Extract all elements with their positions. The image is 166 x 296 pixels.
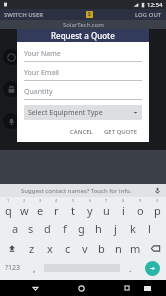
button[interactable]: Suggest contact names? Touch for info. <box>0 184 166 197</box>
staticText: u <box>103 203 110 218</box>
staticText: l <box>148 221 151 236</box>
staticText: z <box>29 241 35 256</box>
button[interactable]: SWITCH USER <box>3 11 45 19</box>
button[interactable]: Your Name <box>24 49 142 62</box>
staticText: 0 <box>156 198 159 203</box>
button[interactable]: GET QUOTE <box>100 126 142 138</box>
staticText: a <box>12 221 19 236</box>
button[interactable]: s <box>23 218 39 238</box>
staticText: s <box>28 221 34 236</box>
staticText: MANAGE NOTIFICATIONS <box>24 116 109 126</box>
button[interactable]: . <box>122 258 139 278</box>
button[interactable]: 7 <box>98 197 115 218</box>
button[interactable]: 8 <box>115 197 132 218</box>
staticText: x <box>47 241 53 256</box>
staticText: c <box>65 241 71 256</box>
button[interactable]: x <box>41 238 59 258</box>
button[interactable]: Back <box>25 280 46 296</box>
button[interactable]: Voice input <box>154 187 161 194</box>
staticText: 6 <box>89 198 92 203</box>
staticText: CANCEL <box>70 128 93 136</box>
staticText: Suggest contact names? Touch for info. <box>21 187 132 195</box>
staticText: 5 <box>72 198 75 203</box>
staticText: k <box>130 221 136 236</box>
button[interactable]: g <box>73 218 90 238</box>
staticText: 12:54 <box>147 1 163 9</box>
button[interactable]: Home <box>70 280 92 296</box>
button[interactable]: z <box>23 238 41 258</box>
button[interactable]: 0 <box>149 197 166 218</box>
staticText: S <box>88 11 91 18</box>
button[interactable]: k <box>124 218 141 238</box>
button[interactable]: Backspace <box>144 238 166 258</box>
button[interactable]: 6 <box>81 197 98 218</box>
staticText: GET QUOTE <box>104 128 138 136</box>
button[interactable]: l <box>141 218 158 238</box>
staticText: LOG OUT <box>135 11 162 19</box>
button[interactable]: ?123 <box>0 258 26 278</box>
button[interactable]: m <box>127 238 144 258</box>
staticText: p <box>154 203 161 218</box>
staticText: b <box>98 241 105 256</box>
staticText: Request a Quote <box>51 30 115 41</box>
button[interactable]: 9 <box>132 197 149 218</box>
staticText: 2 <box>23 198 26 203</box>
button[interactable]: 3 <box>32 197 48 218</box>
staticText: 8 <box>122 198 125 203</box>
staticText: WARRANTY <box>24 52 62 62</box>
button[interactable]: Quantity <box>24 87 142 100</box>
staticText: t <box>71 203 75 218</box>
staticText: Quantity <box>24 87 53 97</box>
button[interactable]: 2 <box>16 197 32 218</box>
staticText: i <box>122 203 125 218</box>
staticText: , <box>33 262 36 274</box>
staticText: r <box>54 203 59 218</box>
button[interactable]: h <box>90 218 107 238</box>
button[interactable] <box>17 29 149 42</box>
staticText: f <box>63 221 67 236</box>
button[interactable]: Shift <box>0 238 23 258</box>
button[interactable]: j <box>107 218 124 238</box>
staticText: h <box>95 221 102 236</box>
staticText: j <box>114 221 117 236</box>
button[interactable]: MANAGE NOTIFICATIONS <box>0 112 166 130</box>
button[interactable]: CANCEL <box>66 126 97 138</box>
staticText: m <box>130 241 141 256</box>
button[interactable]: WARRANTY <box>0 48 166 66</box>
staticText: 9 <box>139 198 142 203</box>
staticText: SolarTech.com <box>63 21 104 29</box>
button[interactable]: n <box>110 238 127 258</box>
button[interactable]: c <box>59 238 76 258</box>
button[interactable]: b <box>93 238 110 258</box>
button[interactable]: Select Equipment Type <box>24 105 142 120</box>
button[interactable]: d <box>39 218 56 238</box>
staticText: q <box>5 203 12 218</box>
button[interactable]: Enter <box>145 261 160 276</box>
button[interactable]: 4 <box>48 197 64 218</box>
button[interactable]: 1 <box>0 197 16 218</box>
button[interactable]: Switch keyboard <box>138 280 157 296</box>
button[interactable]: , <box>26 258 42 278</box>
button[interactable]: v <box>76 238 93 258</box>
staticText: 4 <box>55 198 58 203</box>
staticText: SWITCH USER <box>4 11 44 19</box>
button[interactable]: f <box>56 218 73 238</box>
button[interactable]: LOG OUT <box>134 11 163 19</box>
staticText: Your Email <box>24 68 59 78</box>
staticText: n <box>115 241 122 256</box>
button[interactable]: SolarTech logo <box>86 11 93 18</box>
staticText: Select Equipment Type <box>28 108 103 118</box>
staticText: g <box>78 221 85 236</box>
staticText: d <box>44 221 51 236</box>
staticText: w <box>20 203 29 218</box>
button[interactable]: SECURITY <box>0 80 166 98</box>
button[interactable]: a <box>7 218 23 238</box>
button[interactable]: Your Email <box>24 68 142 81</box>
staticText: 1 <box>7 198 10 203</box>
button[interactable]: Recent apps <box>116 280 138 296</box>
button[interactable]: 5 <box>64 197 81 218</box>
staticText: 7 <box>105 198 108 203</box>
staticText: . <box>129 262 132 274</box>
staticText: o <box>137 203 144 218</box>
